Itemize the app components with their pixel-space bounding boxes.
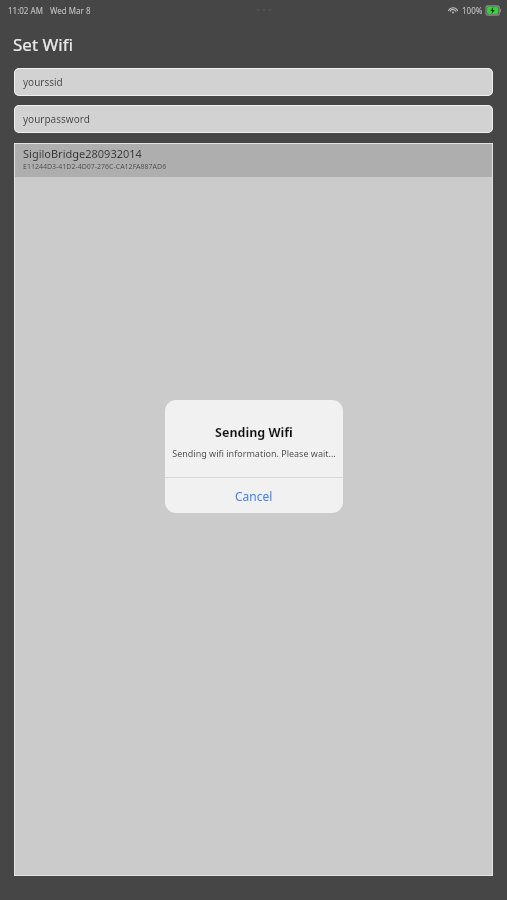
staticText: Sending wifi information. Please wait...	[172, 447, 336, 459]
staticText: Set Wifi	[13, 33, 73, 56]
staticText: E11244D3-41D2-4D07-276C-CA12FA887AD6	[23, 162, 167, 172]
staticText: Cancel	[235, 488, 273, 504]
staticText: 11:02 AM	[8, 5, 43, 16]
staticText: Sending Wifi	[215, 424, 293, 441]
staticText: yourssid	[23, 75, 63, 89]
button[interactable]: SigiloBridge280932014	[14, 143, 493, 177]
button[interactable]: Cancel	[165, 478, 343, 513]
staticText: yourpassword	[23, 112, 90, 126]
staticText: SigiloBridge280932014	[23, 146, 142, 161]
button[interactable]: yourssid	[14, 68, 493, 96]
staticText: 100%	[462, 5, 483, 16]
button[interactable]: yourpassword	[14, 105, 493, 133]
staticText: Wed Mar 8	[50, 5, 91, 16]
